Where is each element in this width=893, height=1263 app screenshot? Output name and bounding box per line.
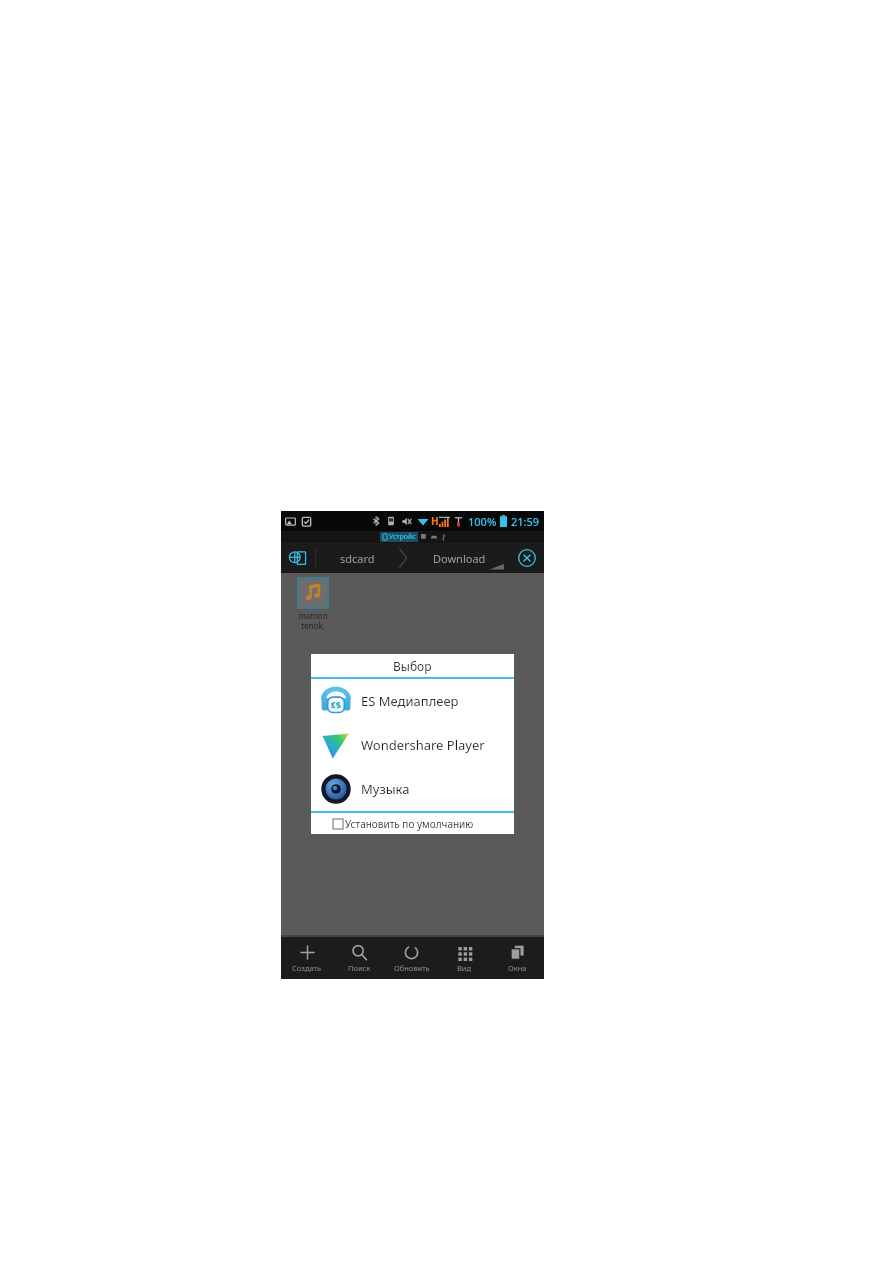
button[interactable]: Wondershare Player	[311, 723, 514, 767]
staticText: Установить по умолчанию	[345, 817, 474, 831]
staticText: Создать	[292, 963, 322, 973]
button[interactable]: Окна	[491, 937, 544, 979]
staticText: H	[431, 514, 439, 528]
staticText: Поиск	[348, 963, 371, 973]
staticText: mamon tenok.	[298, 610, 328, 631]
button[interactable]: Поиск	[333, 937, 385, 979]
button[interactable]: Закрыть	[510, 543, 544, 573]
staticText: Устройс	[389, 532, 416, 542]
button[interactable]: Вид	[438, 937, 491, 979]
button[interactable]: Создать	[281, 937, 333, 979]
button[interactable]: Музыка	[311, 767, 514, 811]
staticText: Выбор	[393, 658, 432, 674]
button[interactable]: Download	[408, 543, 510, 573]
staticText: Вид	[457, 963, 472, 973]
staticText: ES Медиаплеер	[361, 692, 459, 710]
button[interactable]: Установить по умолчанию	[311, 813, 514, 834]
staticText: 21:59	[511, 514, 540, 529]
button[interactable]: ES Медиаплеер	[311, 679, 514, 723]
staticText: sdcard	[340, 551, 375, 566]
button[interactable]: Обновить	[385, 937, 438, 979]
staticText: Download	[433, 551, 486, 566]
staticText: 100%	[468, 514, 497, 529]
button[interactable]: sdcard	[316, 543, 398, 573]
button[interactable]: Окна приложения	[281, 543, 315, 573]
button[interactable]: mamon tenok.	[289, 578, 337, 631]
staticText: Обновить	[394, 963, 430, 973]
staticText: Окна	[508, 963, 527, 973]
staticText: Wondershare Player	[361, 736, 485, 754]
staticText: Музыка	[361, 780, 410, 798]
